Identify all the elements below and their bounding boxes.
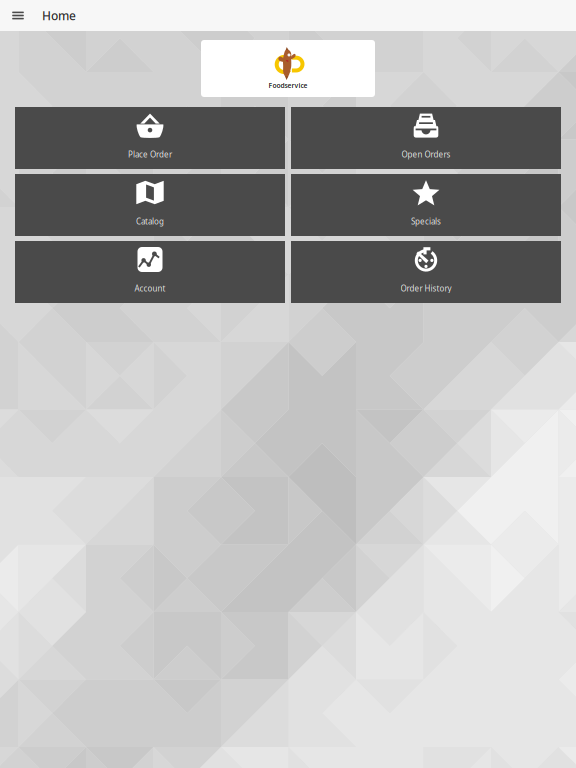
staticText: Order History [400,283,451,294]
staticText: Open Orders [401,149,450,160]
staticText: Home [42,7,76,23]
staticText: Catalog [136,216,164,227]
button[interactable]: Open Orders [291,107,561,169]
button[interactable]: Specials [291,174,561,236]
button[interactable]: Order History [291,241,561,303]
button[interactable]: Menu [0,0,36,31]
staticText: Specials [411,216,441,227]
button[interactable]: Account [15,241,285,303]
staticText: Account [134,283,165,294]
button[interactable]: Place Order [15,107,285,169]
staticText: Place Order [128,149,172,160]
staticText: Foodservice [268,81,307,90]
button[interactable]: Catalog [15,174,285,236]
